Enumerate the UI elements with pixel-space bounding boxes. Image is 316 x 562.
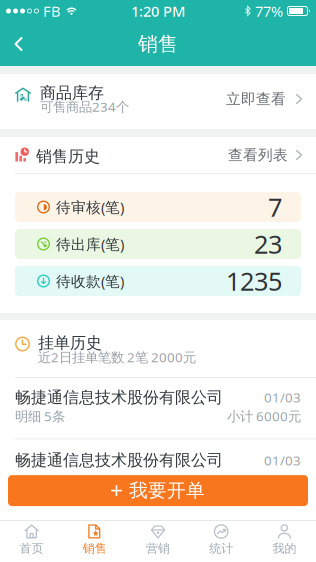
staticText: 可售商品234个	[40, 98, 129, 115]
staticText: 1:20 PM	[131, 1, 185, 21]
staticText: 01/03	[264, 451, 301, 469]
staticText: 畅捷通信息技术股份有限公司	[15, 450, 223, 470]
button[interactable]: 统计	[190, 521, 253, 562]
staticText: 销售	[83, 541, 107, 556]
staticText: 查看列表	[228, 146, 288, 164]
staticText: 我的	[272, 541, 296, 556]
staticText: FB	[43, 1, 61, 21]
button[interactable]: 销售	[63, 521, 126, 562]
staticText: 23	[254, 227, 282, 261]
staticText: 畅捷通信息技术股份有限公司	[15, 387, 223, 407]
button[interactable]: 营销	[126, 521, 190, 562]
button[interactable]: 商品库存	[0, 74, 316, 129]
button[interactable]: 畅捷通信息技术股份有限公司	[0, 439, 316, 475]
button[interactable]: 待出库(笔)	[15, 229, 301, 259]
button[interactable]: 销售历史	[0, 137, 316, 173]
staticText: 营销	[146, 541, 170, 556]
button[interactable]: 我要开单	[0, 475, 316, 506]
staticText: 商品库存	[40, 83, 104, 103]
staticText: 小计 6000元	[227, 407, 301, 425]
staticText: 挂单历史	[38, 333, 102, 353]
button[interactable]: Back	[0, 25, 23, 63]
staticText: 待收款(笔)	[56, 271, 124, 291]
staticText: 待审核(笔)	[56, 197, 124, 217]
staticText: 待出库(笔)	[56, 234, 124, 254]
staticText: 77%	[255, 1, 283, 21]
staticText: 销售历史	[36, 147, 100, 166]
button[interactable]: 首页	[0, 521, 63, 562]
button[interactable]: 待审核(笔)	[15, 192, 301, 222]
staticText: 7	[268, 190, 282, 224]
staticText: 我要开单	[129, 479, 205, 502]
staticText: 1235	[226, 264, 282, 298]
staticText: 明细 5条	[15, 407, 65, 425]
staticText: 立即查看	[226, 90, 286, 108]
staticText: 销售	[138, 32, 178, 56]
button[interactable]: 我的	[253, 521, 316, 562]
staticText: 01/03	[264, 388, 301, 406]
button[interactable]: 畅捷通信息技术股份有限公司	[0, 378, 316, 438]
staticText: 近2日挂单笔数 2笔 2000元	[38, 348, 196, 366]
staticText: 统计	[209, 541, 233, 556]
button[interactable]: 待收款(笔)	[15, 266, 301, 296]
staticText: 首页	[20, 541, 44, 556]
